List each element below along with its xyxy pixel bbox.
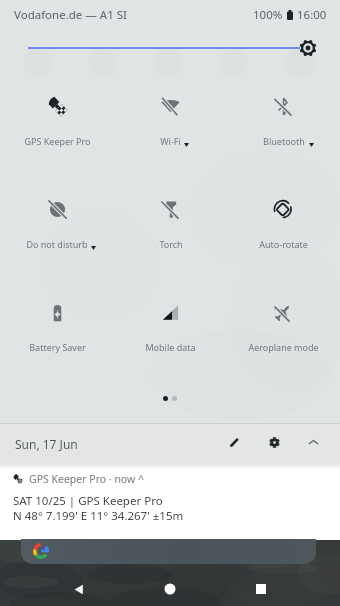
staticText: 16:00 [297, 7, 327, 23]
staticText: GPS Keeper Pro · now ^ [29, 472, 145, 486]
staticText: Bluetooth [263, 135, 305, 147]
staticText: SAT 10/25 | GPS Keeper Pro [13, 493, 163, 509]
button[interactable]: Wi-Fi [114, 76, 227, 156]
button[interactable]: Aeroplane mode [227, 282, 340, 362]
button[interactable]: Recents [247, 575, 275, 603]
button[interactable]: Auto-rotate [227, 179, 340, 259]
button[interactable]: Edit tiles [223, 431, 246, 454]
staticText: Aeroplane mode [248, 341, 319, 353]
staticText: Wi-Fi [160, 135, 181, 147]
staticText: 100% [253, 7, 283, 23]
button[interactable]: Brightness [297, 37, 319, 59]
button[interactable]: Mobile data [114, 282, 227, 362]
staticText: Battery Saver [29, 341, 86, 353]
staticText: Do not disturb [26, 238, 88, 250]
button[interactable]: Battery Saver [0, 282, 114, 362]
button[interactable]: GPS Keeper Pro [0, 76, 114, 156]
staticText: GPS Keeper Pro [24, 135, 91, 147]
button[interactable]: Home [156, 575, 184, 603]
staticText: Sun, 17 Jun [15, 436, 78, 452]
staticText: Vodafone.de — A1 SI [14, 7, 127, 23]
button[interactable]: Collapse [302, 431, 325, 454]
staticText: Auto-rotate [259, 238, 308, 250]
button[interactable]: Back [65, 575, 93, 603]
staticText: Torch [159, 238, 183, 250]
button[interactable]: Bluetooth [227, 76, 340, 156]
button[interactable] [21, 539, 316, 564]
button[interactable]: Settings [263, 431, 286, 454]
staticText: N 48° 7.199' E 11° 34.267' ±15m [13, 508, 184, 524]
staticText: Mobile data [145, 341, 196, 353]
button[interactable]: Do not disturb [0, 179, 114, 259]
button[interactable]: Torch [114, 179, 227, 259]
